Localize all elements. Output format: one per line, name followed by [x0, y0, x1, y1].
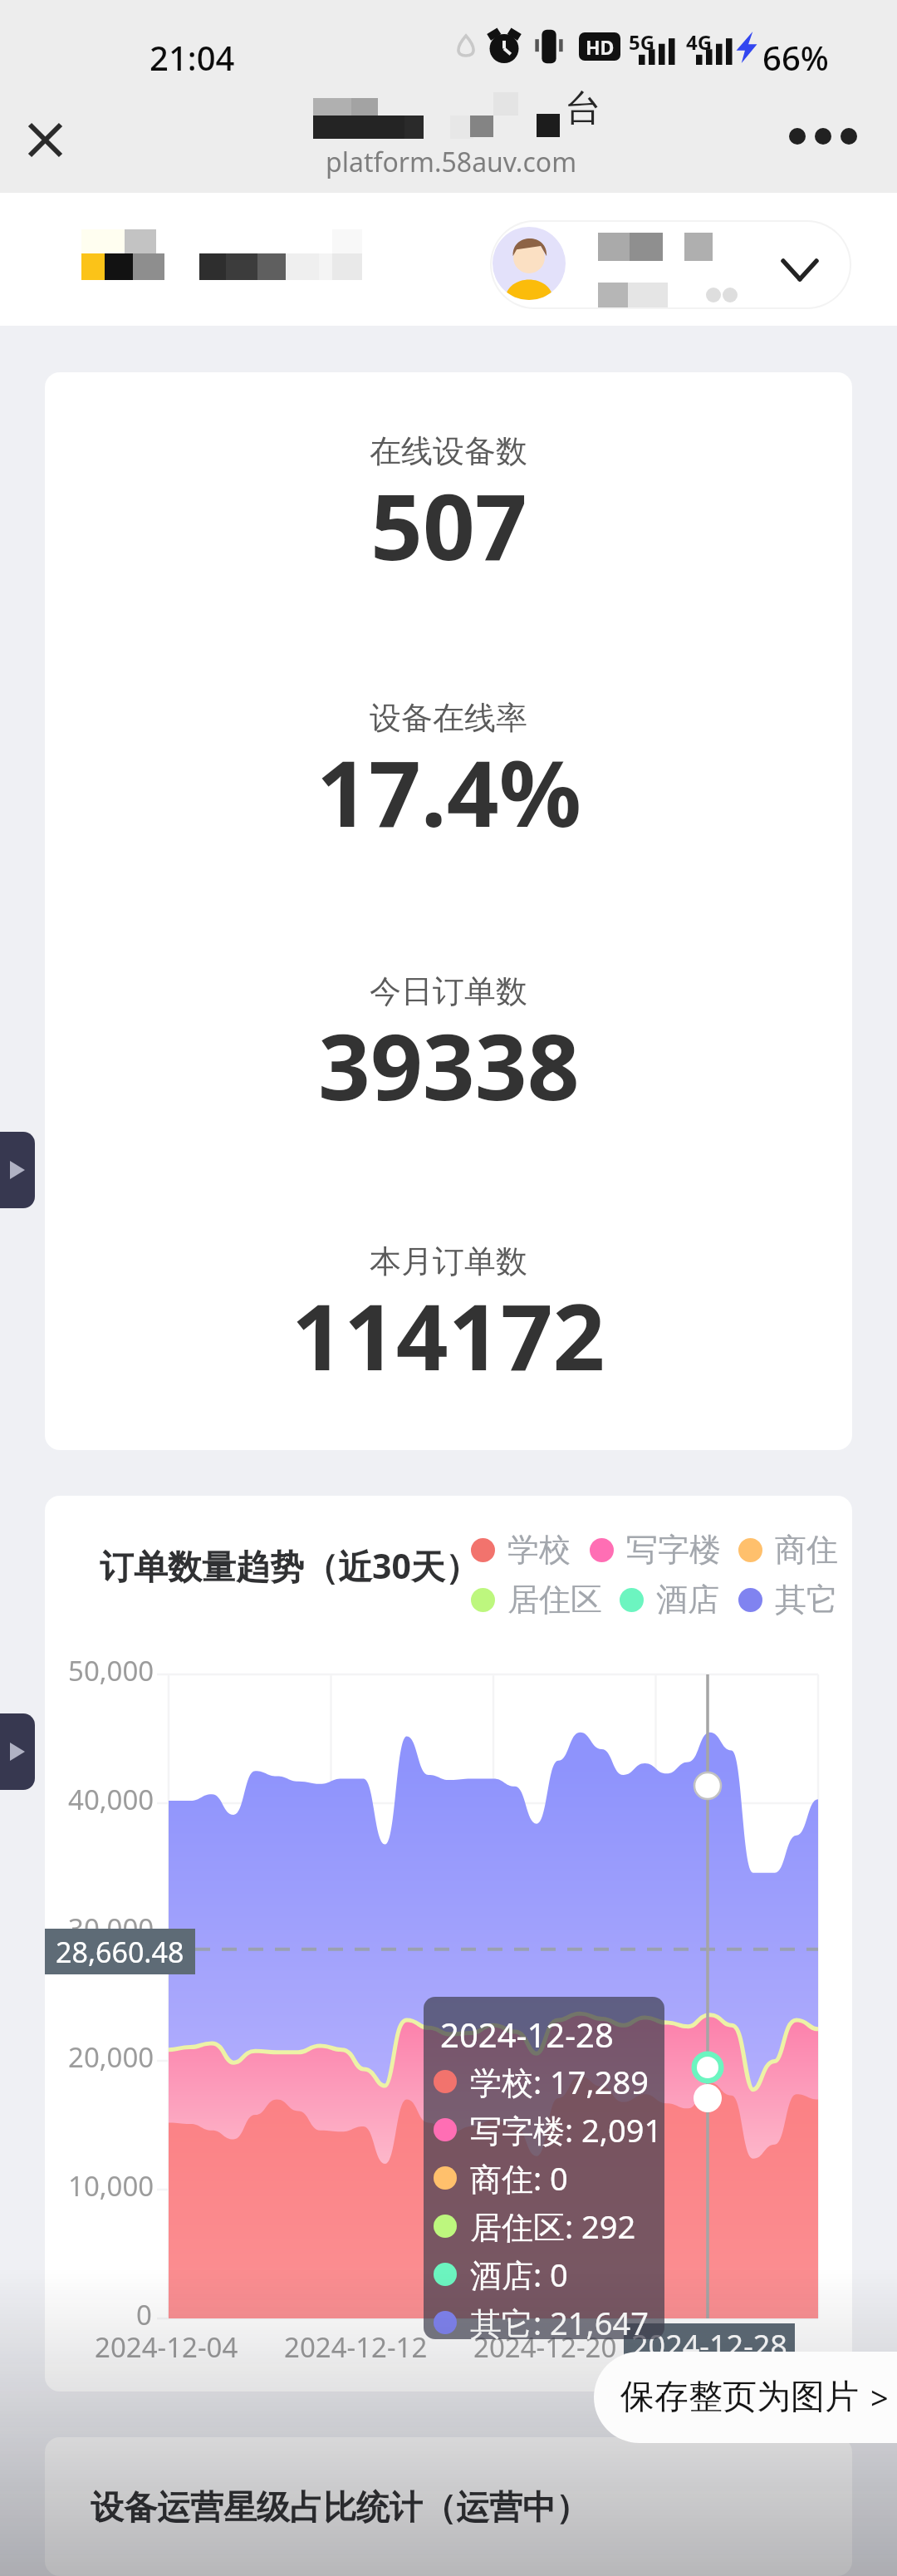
staticText: 设备运营星级占比统计（运营中） [91, 2486, 589, 2528]
staticText: 20,000 [68, 2038, 154, 2076]
staticText: 50,000 [68, 1652, 154, 1689]
button[interactable]: More options [781, 102, 865, 170]
staticText: 39338 [318, 1002, 580, 1127]
staticText: 居住区 [507, 1580, 602, 1620]
staticText: 其它: 21,647 [470, 2301, 649, 2339]
staticText: 4G [686, 28, 713, 56]
staticText: 酒店: 0 [470, 2253, 568, 2296]
staticText: 17.4% [316, 729, 581, 853]
staticText: 66% [762, 35, 829, 80]
staticText: HD [586, 34, 615, 60]
staticText: 21:04 [149, 35, 235, 80]
staticText: 写字楼: 2,091 [470, 2108, 663, 2151]
staticText: 40,000 [68, 1781, 154, 1818]
staticText: 507 [370, 462, 527, 587]
staticText: 商住 [775, 1530, 838, 1570]
button[interactable]: Select account [492, 222, 850, 307]
staticText: 商住: 0 [470, 2156, 568, 2200]
staticText: 在线设备数 [370, 431, 527, 471]
staticText: 28,660.48 [56, 1933, 184, 1971]
staticText: 酒店 [656, 1580, 719, 1620]
staticText: platform.58auv.com [326, 144, 577, 180]
staticText: 居住区: 292 [470, 2205, 636, 2248]
staticText: 10,000 [68, 2167, 154, 2205]
staticText: 保存整页为图片 [620, 2376, 859, 2419]
staticText: 今日订单数 [370, 971, 527, 1011]
staticText: 114172 [292, 1272, 605, 1397]
staticText: 0 [136, 2296, 152, 2333]
staticText: 本月订单数 [370, 1241, 527, 1281]
staticText: 2024-12-28 [440, 2012, 614, 2057]
staticText: > [870, 2376, 889, 2419]
button[interactable]: Open side panel [0, 1713, 35, 1790]
staticText: 2024-12-04 [95, 2328, 238, 2366]
button[interactable]: Open side panel [0, 1132, 35, 1208]
staticText: 30,000 [68, 1910, 154, 1947]
staticText: 台 [565, 86, 601, 131]
staticText: 设备在线率 [370, 698, 527, 738]
staticText: 2024-12-20 [473, 2328, 617, 2366]
button[interactable]: Close [8, 103, 81, 176]
staticText: 2024-12-28 [631, 2325, 787, 2366]
staticText: 学校: 17,289 [470, 2060, 649, 2103]
staticText: 其它 [775, 1580, 838, 1620]
staticText: 写字楼 [626, 1530, 721, 1570]
staticText: 学校 [507, 1530, 571, 1570]
button[interactable]: 保存整页为图片 [594, 2352, 897, 2443]
staticText: 5G [629, 28, 655, 56]
staticText: 订单数量趋势（近30天） [100, 1542, 479, 1589]
staticText: 2024-12-12 [284, 2328, 428, 2366]
